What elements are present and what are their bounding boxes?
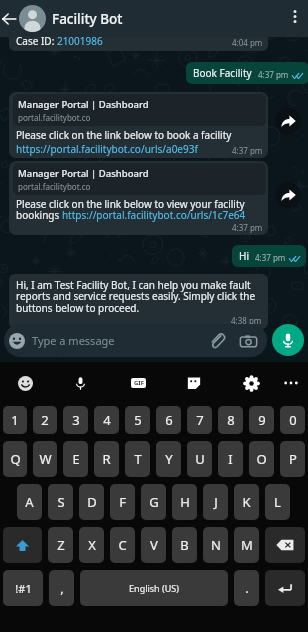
- button[interactable]: Z: [48, 527, 73, 563]
- staticText: Manager Portal | Dashboard: [18, 98, 149, 111]
- button[interactable]: E: [63, 441, 88, 477]
- staticText: 6: [165, 411, 173, 429]
- button[interactable]: 0: [280, 406, 305, 434]
- staticText: A: [25, 493, 34, 511]
- button[interactable]: More options: [283, 0, 307, 37]
- button[interactable]: Forward: [275, 182, 301, 208]
- staticText: 9: [258, 411, 266, 429]
- staticText: C: [118, 536, 127, 554]
- button[interactable]: GIF: [125, 370, 151, 396]
- staticText: K: [242, 493, 251, 511]
- button[interactable]: H: [172, 484, 197, 520]
- staticText: 0: [289, 411, 297, 429]
- button[interactable]: C: [110, 527, 135, 563]
- staticText: 8: [227, 411, 235, 429]
- staticText: Please click on the link below to view y…: [16, 197, 263, 222]
- staticText: 2: [41, 411, 49, 429]
- staticText: 1: [11, 411, 19, 429]
- button[interactable]: Type a message: [4, 324, 267, 357]
- button[interactable]: Voice message: [272, 324, 304, 356]
- button[interactable]: 2: [33, 406, 57, 434]
- staticText: 4:37 pm: [232, 222, 263, 233]
- button[interactable]: Emoji: [12, 370, 38, 396]
- button[interactable]: G: [141, 484, 166, 520]
- button[interactable]: Profile photo: [19, 5, 46, 32]
- button[interactable]: R: [94, 441, 119, 477]
- button[interactable]: 8: [218, 406, 243, 434]
- button[interactable]: 3: [63, 406, 88, 434]
- staticText: Please click on the link below to book a…: [16, 128, 232, 142]
- button[interactable]: D: [79, 484, 104, 520]
- staticText: 7: [196, 411, 204, 429]
- button[interactable]: 1: [3, 406, 27, 434]
- button[interactable]: Attach: [207, 331, 227, 351]
- button[interactable]: 9: [249, 406, 274, 434]
- staticText: Manager Portal | Dashboard: [18, 167, 149, 180]
- button[interactable]: T: [125, 441, 150, 477]
- button[interactable]: Backspace: [265, 527, 305, 563]
- staticText: N: [211, 536, 221, 554]
- button[interactable]: Back: [0, 0, 18, 37]
- staticText: .: [245, 579, 249, 597]
- button[interactable]: J: [203, 484, 228, 520]
- button[interactable]: Q: [3, 441, 27, 477]
- button[interactable]: N: [203, 527, 228, 563]
- staticText: O: [256, 450, 267, 468]
- button[interactable]: 7: [187, 406, 212, 434]
- staticText: https://portal.facilitybot.co/urls/a0e93…: [16, 142, 198, 156]
- button[interactable]: F: [110, 484, 135, 520]
- staticText: Facility Bot: [52, 10, 123, 28]
- button[interactable]: B: [172, 527, 197, 563]
- staticText: B: [180, 536, 189, 554]
- staticText: Case ID: 21001986: [16, 34, 103, 48]
- button[interactable]: M: [234, 527, 259, 563]
- staticText: 4:37 pm: [258, 69, 289, 80]
- staticText: 4: [103, 411, 111, 429]
- staticText: 4:04 pm: [232, 37, 263, 48]
- button[interactable]: Voice input: [67, 370, 93, 396]
- button[interactable]: 6: [156, 406, 181, 434]
- staticText: 5: [134, 411, 142, 429]
- button[interactable]: Y: [156, 441, 181, 477]
- button[interactable]: English (US): [80, 570, 228, 606]
- staticText: English (US): [129, 582, 179, 594]
- button[interactable]: More: [278, 370, 304, 396]
- button[interactable]: !#1: [3, 570, 43, 606]
- button[interactable]: I: [218, 441, 243, 477]
- button[interactable]: S: [48, 484, 73, 520]
- button[interactable]: X: [79, 527, 104, 563]
- staticText: J: [214, 493, 218, 511]
- button[interactable]: Shift: [3, 527, 42, 563]
- button[interactable]: W: [33, 441, 57, 477]
- button[interactable]: A: [17, 484, 42, 520]
- staticText: V: [150, 536, 158, 554]
- button[interactable]: Settings: [238, 370, 264, 396]
- button[interactable]: L: [265, 484, 290, 520]
- button[interactable]: K: [234, 484, 259, 520]
- staticText: U: [195, 450, 205, 468]
- button[interactable]: 5: [125, 406, 150, 434]
- button[interactable]: Stickers: [181, 370, 207, 396]
- button[interactable]: V: [141, 527, 166, 563]
- staticText: R: [102, 450, 111, 468]
- button[interactable]: ,: [49, 570, 74, 606]
- button[interactable]: 4: [94, 406, 119, 434]
- staticText: Book Facility: [193, 66, 252, 80]
- staticText: Type a message: [32, 333, 115, 348]
- button[interactable]: O: [249, 441, 274, 477]
- staticText: Y: [165, 450, 173, 468]
- staticText: L: [274, 493, 281, 511]
- staticText: W: [39, 450, 52, 468]
- button[interactable]: Camera: [238, 331, 258, 351]
- staticText: S: [57, 493, 65, 511]
- staticText: G: [149, 493, 159, 511]
- button[interactable]: Forward: [275, 108, 301, 134]
- staticText: Hi, I am Test Facility Bot, I can help y…: [16, 278, 262, 315]
- staticText: 4:38 pm: [231, 315, 262, 326]
- staticText: ,: [60, 579, 64, 597]
- button[interactable]: Enter: [265, 570, 305, 606]
- staticText: E: [72, 450, 80, 468]
- button[interactable]: P: [280, 441, 305, 477]
- button[interactable]: .: [234, 570, 259, 606]
- button[interactable]: U: [187, 441, 212, 477]
